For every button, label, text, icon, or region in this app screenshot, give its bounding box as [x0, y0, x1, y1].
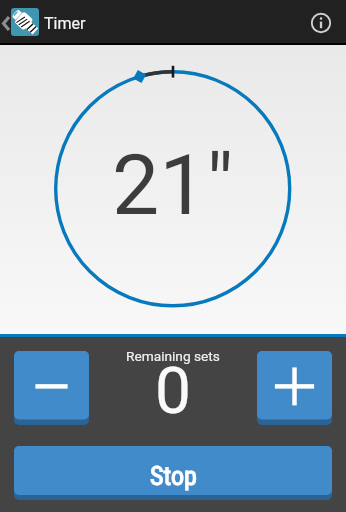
staticText: Stop	[150, 461, 197, 491]
staticText: Timer	[44, 14, 86, 33]
staticText: 21"	[112, 136, 234, 234]
button[interactable]: Stop	[14, 446, 332, 500]
staticText: 0	[155, 354, 191, 429]
button[interactable]: Navigate up	[0, 6, 13, 38]
staticText: Remaining sets	[126, 348, 220, 364]
button[interactable]: Decrease sets	[14, 351, 89, 425]
button[interactable]: Increase sets	[257, 351, 332, 425]
button[interactable]: Info	[300, 2, 344, 42]
